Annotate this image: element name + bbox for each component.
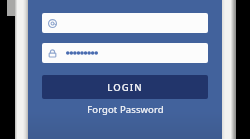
staticText: LOGIN — [107, 81, 143, 94]
button[interactable]: Forgot Password — [28, 101, 222, 117]
staticText: Forgot Password — [87, 103, 164, 116]
button[interactable]: LOGIN — [42, 75, 208, 99]
other: Email — [48, 19, 57, 28]
button[interactable]: Password — [42, 43, 208, 63]
other: Password — [48, 49, 57, 58]
button[interactable]: Email — [42, 13, 208, 33]
